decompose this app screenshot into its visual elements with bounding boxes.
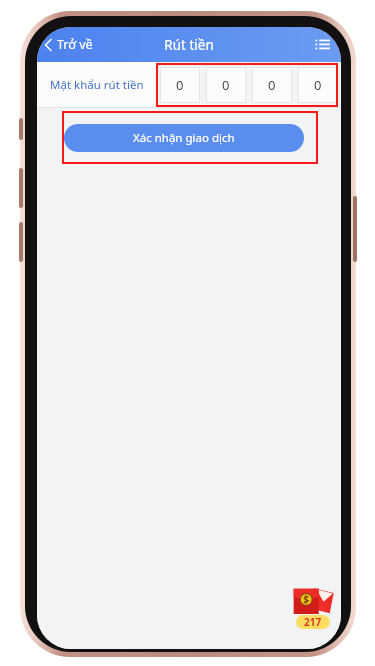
staticText: 0: [268, 76, 276, 94]
staticText: Mật khẩu rút tiền: [50, 77, 144, 93]
button[interactable]: Menu: [304, 27, 341, 62]
staticText: 217: [304, 615, 322, 629]
button[interactable]: 0: [298, 67, 338, 103]
button[interactable]: 0: [160, 67, 200, 103]
staticText: 0: [176, 76, 184, 94]
button[interactable]: 0: [206, 67, 246, 103]
staticText: 0: [222, 76, 230, 94]
staticText: 0: [314, 76, 322, 94]
button[interactable]: Rewards 217: [291, 581, 335, 627]
staticText: Rút tiền: [164, 36, 214, 54]
staticText: Trở về: [57, 36, 93, 53]
button[interactable]: Xác nhận giao dịch: [64, 124, 304, 152]
staticText: Xác nhận giao dịch: [133, 130, 235, 146]
button[interactable]: Trở về: [37, 27, 103, 62]
button[interactable]: 0: [252, 67, 292, 103]
